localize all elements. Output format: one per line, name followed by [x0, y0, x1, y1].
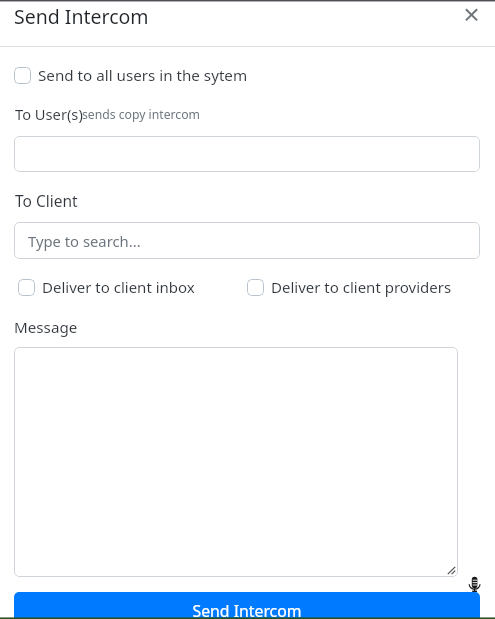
button[interactable]: Deliver to client providers: [247, 277, 452, 297]
button[interactable]: Send to all users in the sytem: [14, 65, 248, 86]
button[interactable]: Deliver to client inbox: [18, 277, 195, 297]
staticText: sends copy intercom: [82, 106, 200, 123]
staticText: To Client: [15, 190, 78, 211]
button[interactable]: Close: [457, 0, 487, 30]
staticText: Type to search...: [28, 231, 141, 251]
staticText: Send to all users in the sytem: [38, 65, 248, 86]
button[interactable]: Type to search...: [14, 222, 480, 259]
button[interactable]: Send Intercom: [14, 592, 480, 619]
button[interactable]: [14, 347, 458, 577]
staticText: Deliver to client providers: [271, 277, 452, 297]
staticText: Send Intercom: [192, 600, 302, 619]
button[interactable]: Voice input: [468, 576, 482, 590]
staticText: Send Intercom: [14, 3, 149, 30]
button[interactable]: [14, 136, 480, 172]
staticText: Message: [14, 317, 78, 338]
staticText: To User(s): [15, 104, 83, 124]
staticText: Deliver to client inbox: [42, 277, 195, 297]
